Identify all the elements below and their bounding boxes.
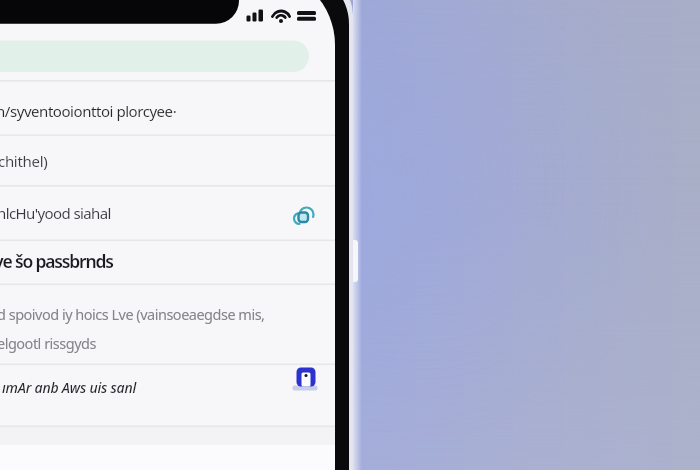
staticText: chithel) [0,151,48,171]
staticText: d spoivod iy hoics Lve (vainsoeaegdse mi… [0,304,265,324]
button[interactable] [0,186,335,239]
staticText: ımAr anb Aws uis sanl [2,378,136,397]
button[interactable] [0,136,335,185]
staticText: hlcHu'yood siahal [0,203,111,223]
staticText: elgootl rissgyds [0,333,96,353]
staticText: ve šo passbrnds [0,249,113,273]
button[interactable] [0,365,335,425]
staticText: n/syventooionttoi plorcyee· [0,101,177,121]
button[interactable] [0,81,335,135]
